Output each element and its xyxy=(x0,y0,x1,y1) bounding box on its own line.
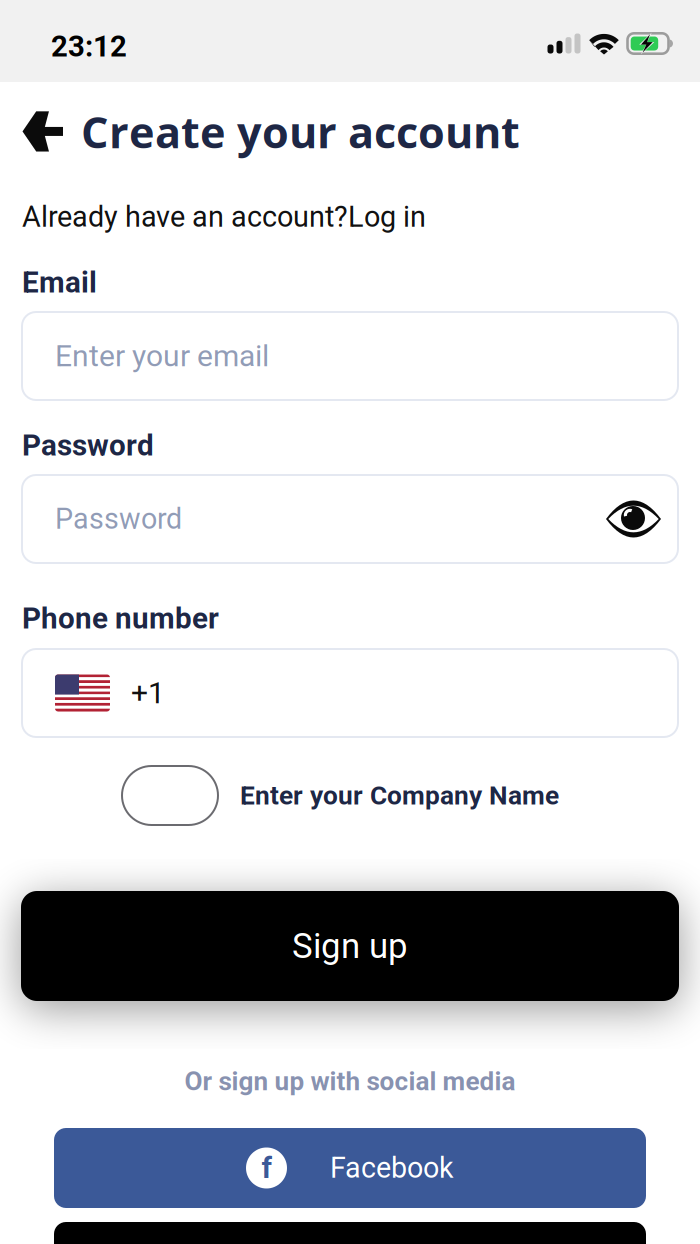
staticText: Password xyxy=(55,502,182,536)
staticText: Phone number xyxy=(22,601,219,636)
staticText: Enter your email xyxy=(55,338,269,374)
staticText: Facebook xyxy=(330,1151,454,1185)
staticText: f xyxy=(261,1151,271,1185)
staticText: 23:12 xyxy=(51,29,127,64)
staticText: Create your account xyxy=(81,102,520,161)
button[interactable]: f xyxy=(54,1128,646,1208)
button[interactable]: Back xyxy=(21,111,64,152)
button[interactable]: Toggle company name xyxy=(122,766,218,825)
staticText: Sign up xyxy=(292,926,408,966)
button[interactable]: Apple xyxy=(54,1222,646,1244)
staticText: Email xyxy=(22,265,97,300)
staticText: Already have an account? xyxy=(22,200,348,234)
button[interactable]: Show password xyxy=(605,500,662,537)
button[interactable]: Sign up xyxy=(21,891,679,1001)
staticText: Log in xyxy=(348,200,426,234)
staticText: Enter your Company Name xyxy=(240,780,559,811)
button[interactable]: Log in xyxy=(348,200,426,234)
staticText: Password xyxy=(22,428,154,463)
staticText: +1 xyxy=(131,675,165,711)
staticText: Or sign up with social media xyxy=(184,1066,515,1097)
